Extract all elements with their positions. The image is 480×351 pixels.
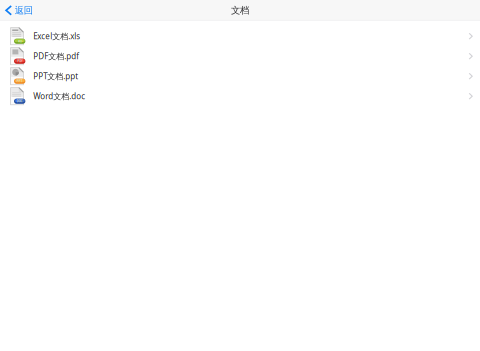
staticText: 文档 <box>231 5 249 16</box>
staticText: XLS <box>18 39 22 43</box>
staticText: PDF <box>17 59 22 63</box>
staticText: DOC <box>17 99 23 103</box>
staticText: Excel文档.xls <box>33 31 80 42</box>
staticText: PPT <box>17 79 23 83</box>
staticText: PPT文档.ppt <box>33 71 78 82</box>
button[interactable]: PDF <box>0 46 480 66</box>
staticText: PDF文档.pdf <box>33 51 79 62</box>
button[interactable]: PPT <box>0 66 480 86</box>
staticText: Word文档.doc <box>33 91 85 102</box>
button[interactable]: 返回 <box>0 0 39 21</box>
staticText: 返回 <box>15 5 33 16</box>
button[interactable]: XLS <box>0 26 480 46</box>
button[interactable]: DOC <box>0 86 480 106</box>
